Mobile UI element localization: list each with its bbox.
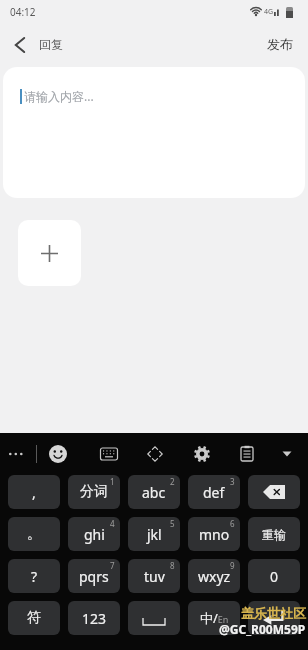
button[interactable]	[46, 442, 70, 466]
button[interactable]: jkl	[128, 517, 180, 551]
staticText: 2	[170, 476, 175, 487]
button[interactable]: ,	[8, 475, 60, 509]
button[interactable]: def	[188, 475, 240, 509]
button[interactable]: 符	[8, 601, 60, 635]
button[interactable]	[248, 601, 300, 635]
staticText: 0	[270, 567, 279, 586]
button[interactable]	[97, 442, 121, 466]
staticText: wxyz	[198, 567, 231, 586]
button[interactable]: 分词	[68, 475, 120, 509]
staticText: 1	[110, 476, 115, 487]
button[interactable]: ghi	[68, 517, 120, 551]
staticText: 重输	[262, 527, 286, 542]
staticText: def	[203, 483, 225, 502]
staticText: jkl	[147, 525, 162, 544]
button[interactable]	[18, 220, 81, 286]
button[interactable]: tuv	[128, 559, 180, 593]
staticText: 。	[27, 525, 41, 543]
staticText: 123	[82, 609, 107, 628]
button[interactable]	[190, 442, 214, 466]
button[interactable]	[143, 442, 167, 466]
button[interactable]: 中/En	[188, 601, 240, 635]
button[interactable]: 重输	[248, 517, 300, 551]
staticText: 6	[230, 518, 235, 529]
staticText: 3	[230, 476, 235, 487]
button[interactable]	[248, 475, 300, 509]
button[interactable]: ?	[8, 559, 60, 593]
staticText: 9	[230, 560, 235, 571]
staticText: 7	[110, 560, 115, 571]
button[interactable]: mno	[188, 517, 240, 551]
staticText: 请输入内容...	[24, 88, 94, 104]
staticText: 符	[27, 609, 41, 627]
button[interactable]: 回复	[0, 37, 63, 52]
button[interactable]: pqrs	[68, 559, 120, 593]
staticText: ?	[31, 567, 38, 586]
button[interactable]: 请输入内容...	[3, 67, 305, 198]
staticText: ,	[32, 483, 36, 502]
staticText: 4	[110, 518, 115, 529]
staticText: 4G	[264, 7, 274, 17]
staticText: mno	[199, 525, 230, 544]
staticText: 分词	[80, 483, 108, 501]
staticText: 5	[170, 518, 175, 529]
staticText: 盖乐世社区	[241, 605, 306, 621]
button[interactable]: 发布	[267, 36, 308, 52]
staticText: pqrs	[79, 567, 109, 586]
button[interactable]: 。	[8, 517, 60, 551]
button[interactable]: abc	[128, 475, 180, 509]
button[interactable]: wxyz	[188, 559, 240, 593]
staticText: abc	[142, 483, 166, 502]
staticText: 中/En	[200, 609, 229, 627]
staticText: 回复	[39, 37, 63, 52]
button[interactable]: 0	[248, 559, 300, 593]
staticText: tuv	[144, 567, 165, 586]
staticText: @GC_R00M59P	[219, 621, 306, 637]
staticText: ghi	[84, 525, 105, 544]
button[interactable]	[128, 601, 180, 635]
staticText: 发布	[267, 36, 293, 52]
button[interactable]	[275, 442, 299, 466]
staticText: 8	[170, 560, 175, 571]
staticText: 04:12	[10, 5, 36, 19]
button[interactable]: 123	[68, 601, 120, 635]
button[interactable]	[235, 442, 259, 466]
